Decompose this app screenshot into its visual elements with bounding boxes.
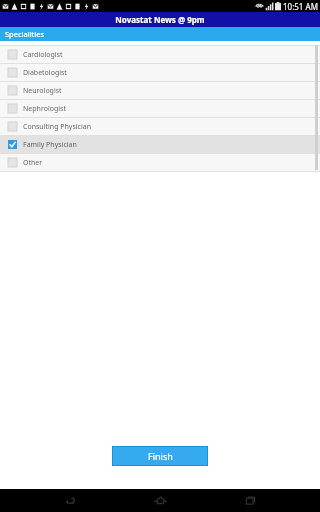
staticText: Neurologist bbox=[23, 86, 62, 96]
staticText: Nephrologist bbox=[23, 104, 66, 114]
staticText: Finish bbox=[148, 450, 173, 462]
button[interactable]: Finish bbox=[112, 446, 208, 466]
button[interactable]: Diabetologist bbox=[0, 64, 320, 81]
button[interactable]: Other bbox=[0, 154, 320, 171]
staticText: Cardiologist bbox=[23, 50, 63, 60]
staticText: Novastat News @ 9pm bbox=[115, 14, 205, 25]
staticText: Specialities bbox=[5, 29, 45, 39]
button[interactable]: Nephrologist bbox=[0, 100, 320, 117]
button[interactable]: Home bbox=[140, 489, 180, 512]
button[interactable]: Consulting Physician bbox=[0, 118, 320, 135]
button[interactable]: Family Physician bbox=[0, 136, 320, 153]
button[interactable]: Neurologist bbox=[0, 82, 320, 99]
staticText: Diabetologist bbox=[23, 68, 67, 78]
button[interactable]: Back bbox=[50, 489, 90, 512]
staticText: Consulting Physician bbox=[23, 122, 91, 132]
button[interactable]: Recent apps bbox=[230, 489, 270, 512]
staticText: Other bbox=[23, 158, 43, 168]
button[interactable]: Specialities bbox=[0, 27, 320, 41]
staticText: 10:51 AM bbox=[283, 1, 318, 12]
staticText: Family Physician bbox=[23, 140, 77, 150]
button[interactable]: Cardiologist bbox=[0, 46, 320, 63]
